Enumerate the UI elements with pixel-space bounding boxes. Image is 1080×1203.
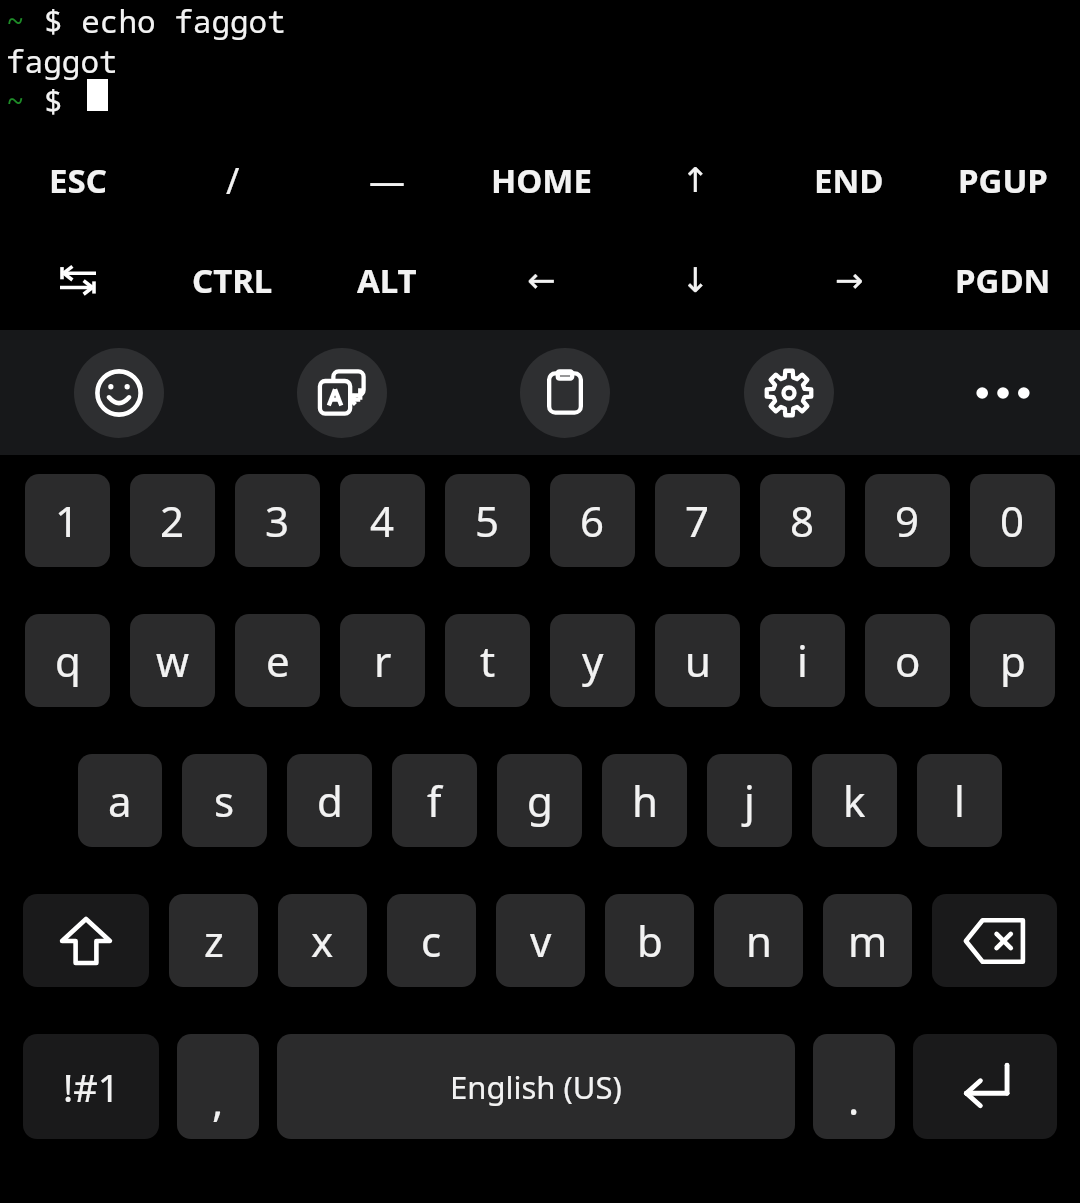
button[interactable]: PGDN <box>926 230 1080 330</box>
button[interactable]: y <box>550 614 635 707</box>
staticText: u <box>685 632 711 689</box>
button[interactable]: z <box>169 894 258 987</box>
button[interactable]: Emoji <box>74 348 164 438</box>
staticText: 4 <box>370 492 395 549</box>
staticText: l <box>954 772 965 829</box>
button[interactable]: 5 <box>445 474 530 567</box>
button[interactable]: e <box>235 614 320 707</box>
button[interactable]: PGUP <box>926 130 1080 230</box>
staticText: ~ <box>6 80 25 122</box>
button[interactable]: v <box>496 894 585 987</box>
button[interactable]: 0 <box>970 474 1055 567</box>
button[interactable]: 2 <box>130 474 215 567</box>
button[interactable]: → <box>772 230 926 330</box>
button[interactable]: b <box>605 894 694 987</box>
staticText: . <box>848 1070 860 1127</box>
button[interactable]: s <box>182 754 267 847</box>
staticText: a <box>108 772 132 829</box>
button[interactable]: i <box>760 614 845 707</box>
staticText: g <box>527 772 553 829</box>
staticText: p <box>1000 632 1026 689</box>
staticText: y <box>582 632 604 689</box>
button[interactable]: ALT <box>310 230 464 330</box>
button[interactable]: ← <box>464 230 618 330</box>
staticText: v <box>530 912 552 969</box>
button[interactable]: CTRL <box>155 230 310 330</box>
staticText: 2 <box>160 492 185 549</box>
staticText: → <box>835 260 864 300</box>
staticText: CTRL <box>192 258 273 303</box>
button[interactable]: 3 <box>235 474 320 567</box>
button[interactable]: Clipboard <box>520 348 610 438</box>
button[interactable]: , <box>177 1034 259 1139</box>
staticText: , <box>212 1072 224 1129</box>
button[interactable]: Translate <box>297 348 387 438</box>
staticText: k <box>843 772 866 829</box>
button[interactable]: — <box>310 130 464 230</box>
button[interactable]: x <box>278 894 367 987</box>
staticText: d <box>317 772 343 829</box>
button[interactable]: !#1 <box>23 1034 159 1139</box>
button[interactable]: o <box>865 614 950 707</box>
staticText: PGDN <box>955 258 1051 303</box>
staticText: h <box>632 772 658 829</box>
staticText: PGUP <box>958 158 1048 203</box>
staticText: HOME <box>491 158 592 203</box>
staticText: ← <box>527 260 556 300</box>
button[interactable]: ↓ <box>618 230 772 330</box>
staticText: z <box>204 912 224 969</box>
button[interactable]: Backspace <box>932 894 1057 987</box>
button[interactable]: 4 <box>340 474 425 567</box>
button[interactable]: q <box>25 614 110 707</box>
button[interactable]: Enter <box>913 1034 1057 1139</box>
button[interactable]: . <box>813 1034 895 1139</box>
button[interactable]: ESC <box>0 130 155 230</box>
button[interactable]: a <box>78 754 162 847</box>
staticText: ↓ <box>681 260 710 300</box>
button[interactable]: / <box>155 130 310 230</box>
staticText: $ echo faggot <box>44 0 286 42</box>
staticText: c <box>421 912 442 969</box>
button[interactable]: c <box>387 894 476 987</box>
button[interactable]: 8 <box>760 474 845 567</box>
button[interactable]: 7 <box>655 474 740 567</box>
staticText: ↑ <box>681 160 710 200</box>
button[interactable]: w <box>130 614 215 707</box>
button[interactable]: More options <box>968 358 1038 428</box>
button[interactable]: END <box>772 130 926 230</box>
staticText: f <box>427 772 442 829</box>
staticText: 8 <box>790 492 815 549</box>
staticText: English (US) <box>450 1066 622 1108</box>
staticText: 1 <box>55 492 80 549</box>
button[interactable]: English (US) <box>277 1034 795 1139</box>
staticText: i <box>797 632 808 689</box>
button[interactable]: l <box>917 754 1002 847</box>
button[interactable]: k <box>812 754 897 847</box>
staticText: t <box>480 632 496 689</box>
button[interactable]: u <box>655 614 740 707</box>
button[interactable]: n <box>714 894 803 987</box>
button[interactable]: m <box>823 894 912 987</box>
button[interactable]: 6 <box>550 474 635 567</box>
button[interactable]: Settings <box>744 348 834 438</box>
button[interactable]: 1 <box>25 474 110 567</box>
button[interactable]: r <box>340 614 425 707</box>
staticText: j <box>744 772 755 829</box>
button[interactable]: ↑ <box>618 130 772 230</box>
staticText: ~ <box>6 0 25 42</box>
button[interactable]: Shift <box>23 894 149 987</box>
staticText: 3 <box>265 492 290 549</box>
button[interactable]: g <box>497 754 582 847</box>
staticText: — <box>369 156 406 205</box>
button[interactable]: f <box>392 754 477 847</box>
button[interactable]: h <box>602 754 687 847</box>
button[interactable]: j <box>707 754 792 847</box>
button[interactable]: d <box>287 754 372 847</box>
button[interactable]: p <box>970 614 1055 707</box>
staticText: m <box>848 912 888 969</box>
button[interactable]: Tab <box>0 230 155 330</box>
button[interactable]: 9 <box>865 474 950 567</box>
button[interactable]: HOME <box>464 130 618 230</box>
staticText: 9 <box>895 492 920 549</box>
button[interactable]: t <box>445 614 530 707</box>
